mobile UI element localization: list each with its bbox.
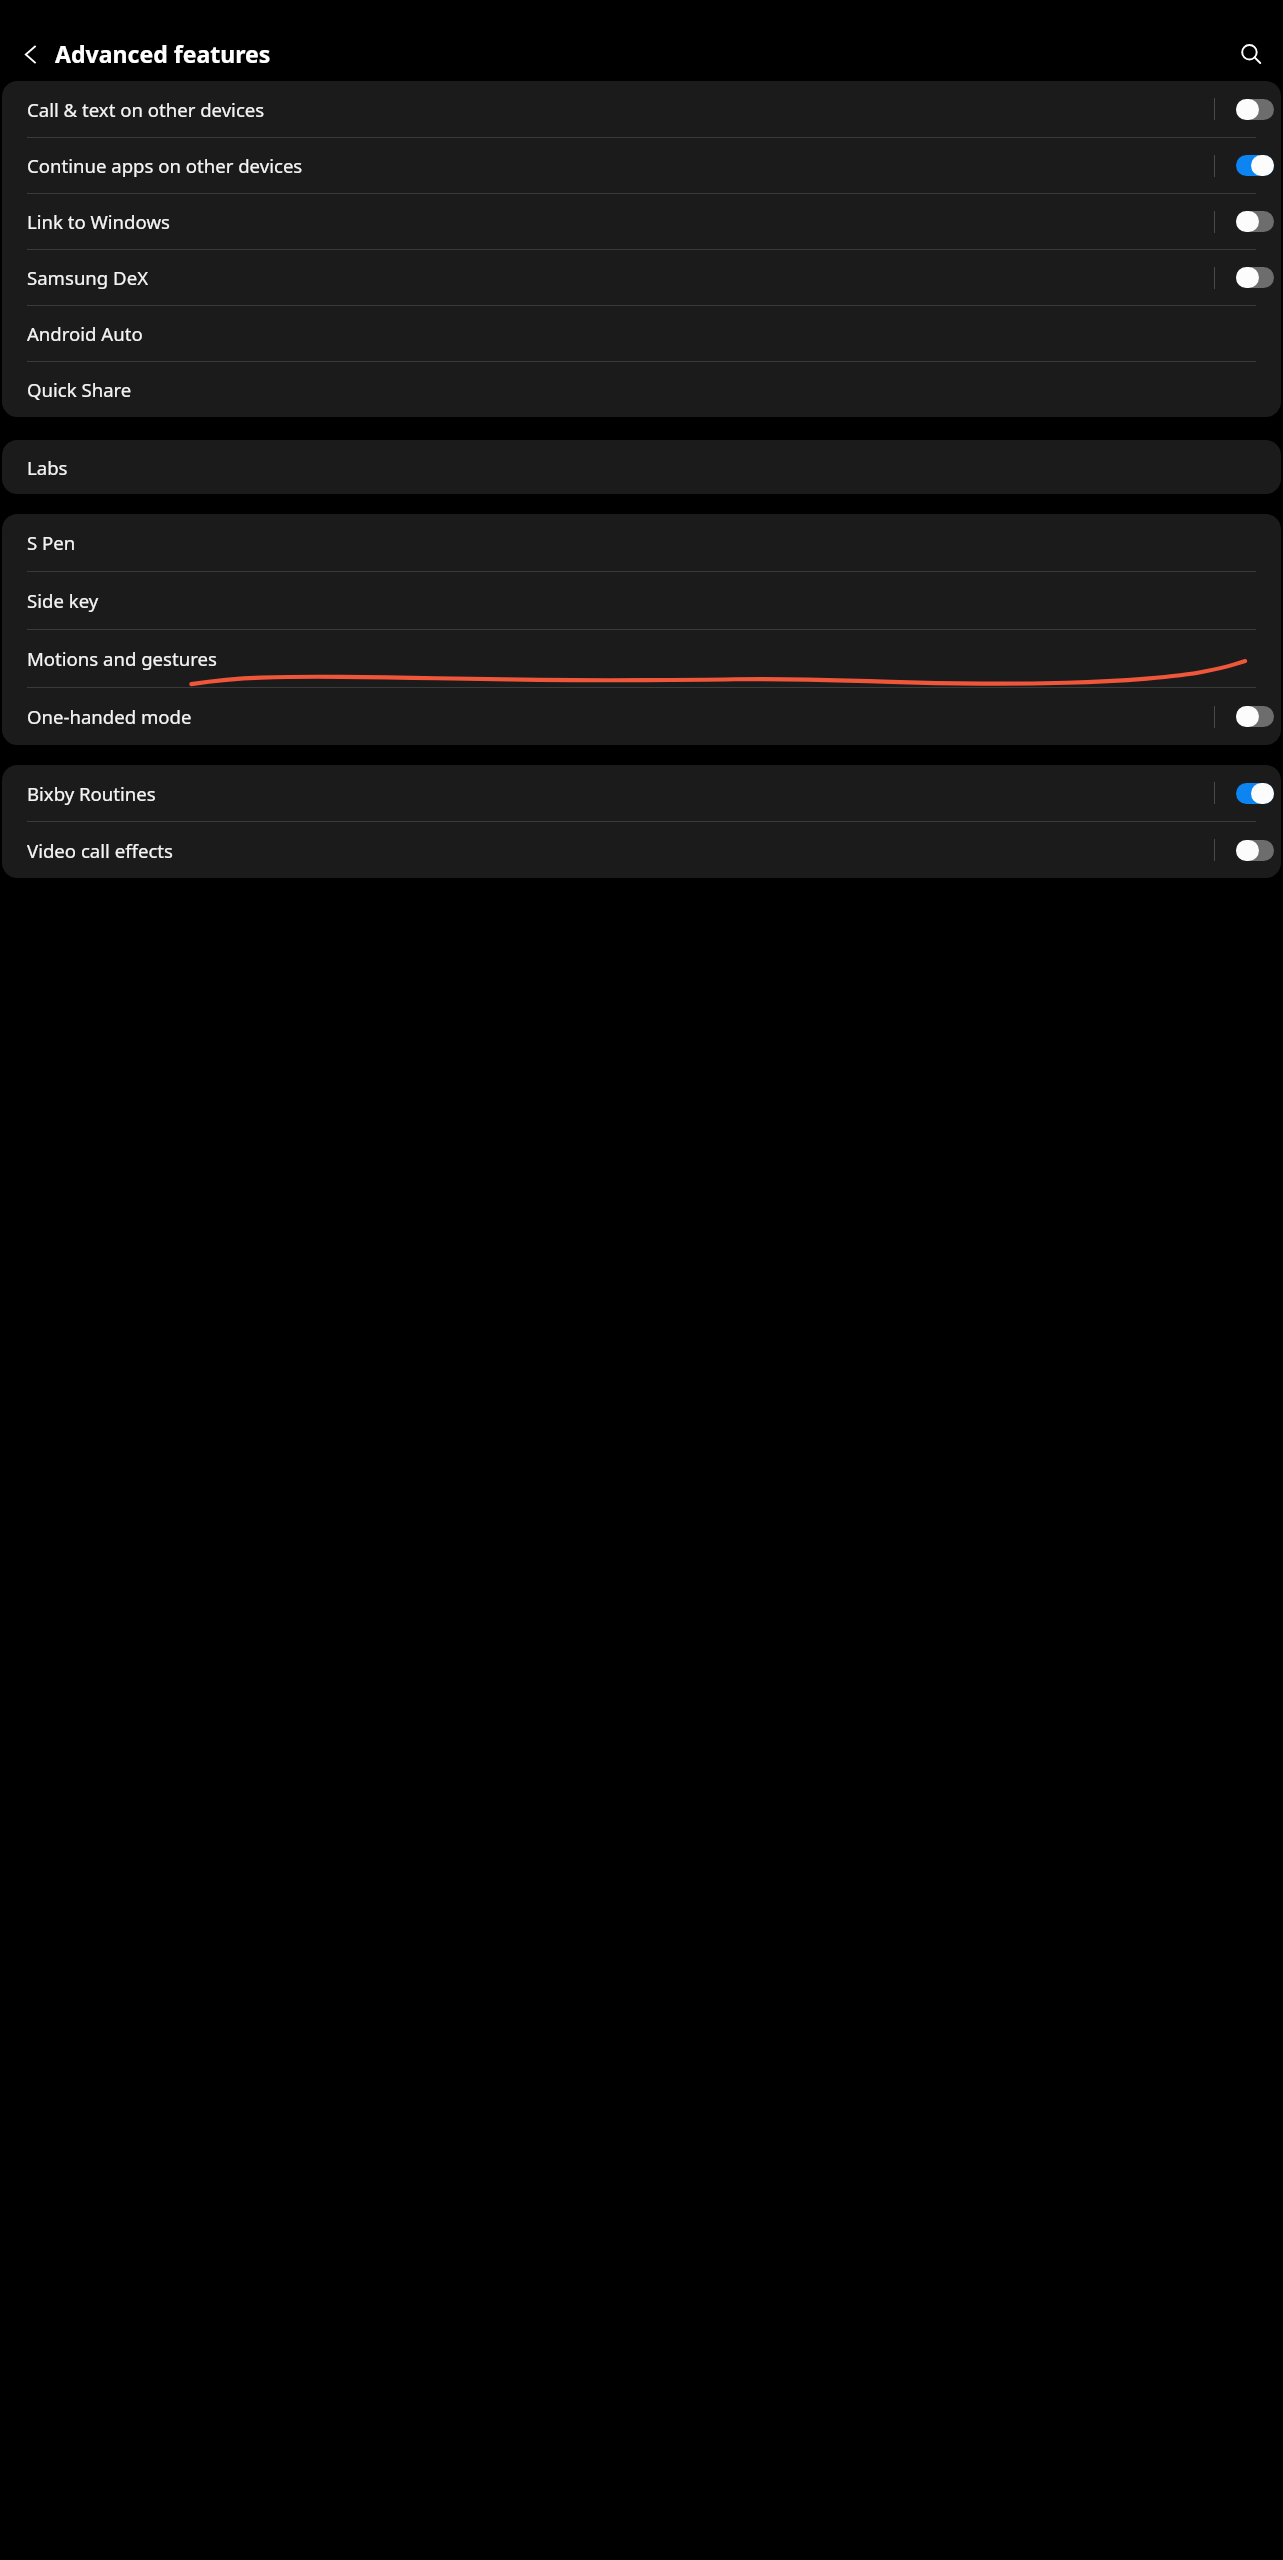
button[interactable]: Switch, off: [1214, 822, 1281, 878]
staticText: Labs: [27, 455, 68, 480]
button[interactable]: Call & text on other devices: [2, 81, 1281, 137]
button[interactable]: Search: [1232, 35, 1270, 73]
staticText: Video call effects: [27, 838, 173, 863]
staticText: Link to Windows: [27, 209, 170, 234]
button[interactable]: Switch, off: [1214, 250, 1281, 305]
button[interactable]: Android Auto: [2, 306, 1281, 361]
button[interactable]: Labs: [2, 440, 1281, 494]
button[interactable]: S Pen: [2, 514, 1281, 571]
button[interactable]: Continue apps on other devices: [2, 138, 1281, 193]
button[interactable]: One-handed mode: [2, 688, 1281, 745]
button[interactable]: Switch, off: [1214, 81, 1281, 137]
staticText: Advanced features: [55, 38, 271, 69]
button[interactable]: Switch, off: [1214, 194, 1281, 249]
staticText: Android Auto: [27, 321, 143, 346]
button[interactable]: Switch, off: [1214, 688, 1281, 745]
button[interactable]: Video call effects: [2, 822, 1281, 878]
staticText: One-handed mode: [27, 704, 192, 729]
button[interactable]: Navigate up: [13, 36, 49, 72]
staticText: Call & text on other devices: [27, 97, 265, 122]
button[interactable]: Bixby Routines: [2, 765, 1281, 821]
button[interactable]: Switch, on: [1214, 138, 1281, 193]
button[interactable]: Quick Share: [2, 362, 1281, 417]
button[interactable]: Switch, on: [1214, 765, 1281, 821]
staticText: Quick Share: [27, 377, 132, 402]
button[interactable]: Side key: [2, 572, 1281, 629]
button[interactable]: Link to Windows: [2, 194, 1281, 249]
staticText: S Pen: [27, 530, 76, 555]
staticText: Side key: [27, 588, 99, 613]
staticText: Bixby Routines: [27, 781, 156, 806]
button[interactable]: Motions and gestures: [2, 630, 1281, 687]
staticText: Continue apps on other devices: [27, 153, 303, 178]
button[interactable]: Samsung DeX: [2, 250, 1281, 305]
staticText: Samsung DeX: [27, 265, 149, 290]
staticText: Motions and gestures: [27, 646, 217, 671]
